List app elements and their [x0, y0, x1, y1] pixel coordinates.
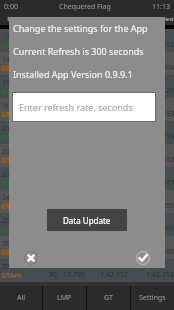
staticText: 1:42.432 — [128, 155, 174, 165]
staticText: 14 — [0, 55, 10, 65]
staticText: 1:42.033 — [85, 63, 128, 73]
staticText: 0:00 — [4, 2, 18, 12]
button[interactable]: All — [0, 286, 42, 310]
staticText: 51 — [43, 201, 57, 211]
staticText: Data Update — [63, 215, 111, 226]
staticText: GT3 — [1, 225, 15, 235]
button[interactable]: Enter refresh rate, seconds — [12, 92, 156, 122]
staticText: GT — [104, 293, 113, 303]
staticText: All — [17, 293, 26, 303]
staticText: Gap — [57, 15, 83, 23]
staticText: GT3 — [1, 87, 15, 97]
staticText: GTAm — [1, 248, 22, 258]
staticText: GTAm — [1, 110, 22, 120]
staticText: 13.790 — [57, 270, 85, 280]
staticText: 1:42.418 — [128, 270, 174, 280]
button[interactable]: 25 — [0, 213, 174, 236]
staticText: Chequered Flag — [59, 2, 111, 12]
button[interactable]: LMP — [43, 286, 86, 310]
staticText: 34 — [43, 109, 57, 119]
staticText: Best — [121, 15, 174, 23]
staticText: 83 — [43, 86, 57, 96]
button[interactable]: 14 — [0, 52, 174, 75]
staticText: GT3 — [1, 179, 15, 189]
staticText: Last — [83, 15, 121, 23]
staticText: Enter refresh rate, seconds — [19, 101, 133, 113]
staticText: 15 — [0, 78, 10, 88]
button[interactable]: GT — [87, 286, 130, 310]
button[interactable]: 27 — [0, 259, 174, 282]
button[interactable]: 15 — [0, 75, 174, 98]
button[interactable]: Settings — [131, 286, 174, 310]
staticText: 23 — [0, 170, 10, 180]
staticText: Current Refresh is 300 seconds — [13, 45, 144, 57]
staticText: 1.345 — [57, 40, 85, 50]
staticText: 1:42.655 — [128, 201, 174, 211]
staticText: 1:42.812 — [85, 201, 128, 211]
staticText: 1 — [0, 32, 10, 42]
staticText: Settings — [139, 293, 166, 303]
staticText: Team — [11, 15, 43, 23]
staticText: 1:42.517 — [128, 178, 174, 188]
staticText: 1:42.233 — [128, 109, 174, 119]
staticText: 1:41.904 — [128, 63, 174, 73]
staticText: GTAm — [1, 202, 22, 212]
staticText: LMP — [57, 293, 72, 303]
staticText: 24 — [0, 193, 10, 203]
button[interactable]: Confirm — [136, 251, 150, 265]
button[interactable]: 26 — [0, 236, 174, 259]
button[interactable]: 16 — [0, 98, 174, 121]
staticText: P — [0, 15, 11, 23]
staticText: 1:42.310 — [128, 132, 174, 142]
button[interactable]: 23 — [0, 167, 174, 190]
staticText: 1:42.311 — [85, 86, 128, 96]
staticText: 1:42.701 — [128, 224, 174, 234]
button[interactable]: Cancel — [24, 251, 38, 265]
staticText: 64 — [43, 63, 57, 73]
staticText: GT3 — [1, 41, 15, 51]
staticText: 41 — [43, 40, 57, 50]
staticText: 40 — [43, 270, 57, 280]
staticText: 1:42.388 — [128, 247, 174, 257]
staticText: 22 — [0, 147, 10, 157]
button[interactable]: Data Update — [47, 209, 127, 231]
staticText: 1:42.402 — [85, 109, 128, 119]
staticText: No — [43, 15, 57, 23]
staticText: GTAm — [1, 271, 22, 281]
staticText: 1:41.512 — [128, 40, 174, 50]
staticText: 8.415 — [57, 201, 85, 211]
button[interactable]: 21 — [0, 121, 174, 144]
staticText: 11:13 — [152, 2, 170, 12]
staticText: 2.512 — [57, 63, 85, 73]
staticText: 1:42.905 — [85, 224, 128, 234]
staticText: 1:42.120 — [128, 86, 174, 96]
staticText: 4.002 — [57, 109, 85, 119]
staticText: 9.921 — [57, 224, 85, 234]
staticText: 21 — [0, 124, 10, 134]
staticText: 26 — [0, 239, 10, 249]
staticText: Installed App Version 0.9.9.1 — [13, 68, 133, 80]
button[interactable]: 1 — [0, 29, 174, 52]
staticText: GT3 — [1, 133, 15, 143]
button[interactable]: 24 — [0, 190, 174, 213]
staticText: GT3 — [1, 64, 15, 74]
button[interactable]: 22 — [0, 144, 174, 167]
staticText: 27 — [0, 262, 10, 272]
staticText: 1:41.861 — [85, 40, 128, 50]
staticText: 25 — [0, 216, 10, 226]
staticText: 3.271 — [57, 86, 85, 96]
staticText: 16 — [0, 101, 10, 111]
staticText: GTAm — [1, 156, 22, 166]
